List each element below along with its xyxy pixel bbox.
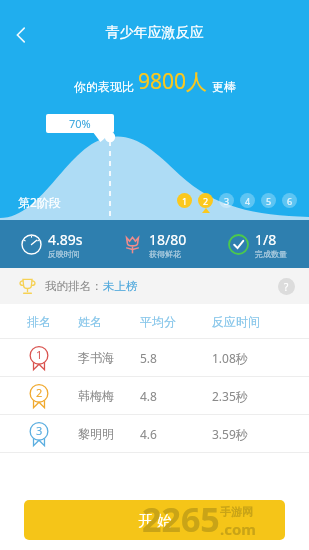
staticText: 3.59秒 [212, 426, 248, 442]
staticText: 2 [203, 195, 209, 207]
button[interactable]: 2 [195, 193, 216, 213]
button[interactable]: 5 [258, 193, 279, 213]
staticText: 反映时间 [48, 249, 80, 259]
staticText: 3 [224, 195, 230, 207]
staticText: 韩梅梅 [78, 388, 140, 403]
button[interactable]: Help [278, 278, 295, 295]
button[interactable]: 1/8 [206, 220, 309, 268]
button[interactable]: 1 [174, 193, 195, 213]
staticText: 获得鲜花 [149, 249, 181, 259]
staticText: 18/80 [149, 230, 187, 249]
button[interactable]: 4 [237, 193, 258, 213]
staticText: 排名 [27, 314, 51, 329]
staticText: 2.35秒 [212, 388, 248, 404]
staticText: 1/8 [255, 230, 277, 249]
staticText: 姓名 [78, 314, 140, 329]
staticText: 6 [287, 195, 293, 207]
button[interactable]: 3 [0, 415, 309, 452]
button[interactable]: 2 [0, 377, 309, 414]
staticText: 4 [245, 195, 251, 207]
button[interactable]: 18/80 [103, 220, 206, 268]
staticText: 1.08秒 [212, 350, 248, 366]
button[interactable]: 1 [0, 339, 309, 376]
staticText: 4.6 [140, 426, 212, 442]
button[interactable]: 6 [279, 193, 300, 213]
staticText: 青少年应激反应 [0, 24, 309, 42]
staticText: 70% [69, 116, 91, 131]
staticText: 更棒 [212, 79, 236, 94]
staticText: .com [220, 519, 256, 539]
staticText: 开 始 [138, 510, 172, 530]
staticText: 反应时间 [212, 314, 260, 329]
staticText: 平均分 [140, 314, 212, 329]
staticText: 9800人 [138, 67, 208, 96]
staticText: 完成数量 [255, 249, 287, 259]
staticText: 4.8 [140, 388, 212, 404]
staticText: ? [284, 280, 289, 294]
staticText: 2265 [142, 496, 220, 542]
button[interactable]: 3 [216, 193, 237, 213]
staticText: 1 [36, 347, 43, 362]
button[interactable]: Back [4, 18, 38, 52]
staticText: 1 [182, 195, 188, 207]
button[interactable]: 4.89s [0, 220, 103, 268]
staticText: 李书海 [78, 350, 140, 365]
staticText: 未上榜 [103, 279, 138, 293]
button[interactable]: 开 始 [24, 500, 285, 540]
staticText: 5.8 [140, 350, 212, 366]
staticText: 3 [36, 423, 43, 438]
staticText: 手游网 [220, 505, 253, 519]
staticText: 2 [36, 385, 43, 400]
staticText: 5 [266, 195, 272, 207]
staticText: 我的排名： [45, 279, 103, 293]
staticText: 第2阶段 [18, 194, 61, 210]
staticText: 4.89s [48, 230, 83, 249]
staticText: 黎明明 [78, 426, 140, 441]
staticText: 你的表现比 [74, 79, 134, 94]
